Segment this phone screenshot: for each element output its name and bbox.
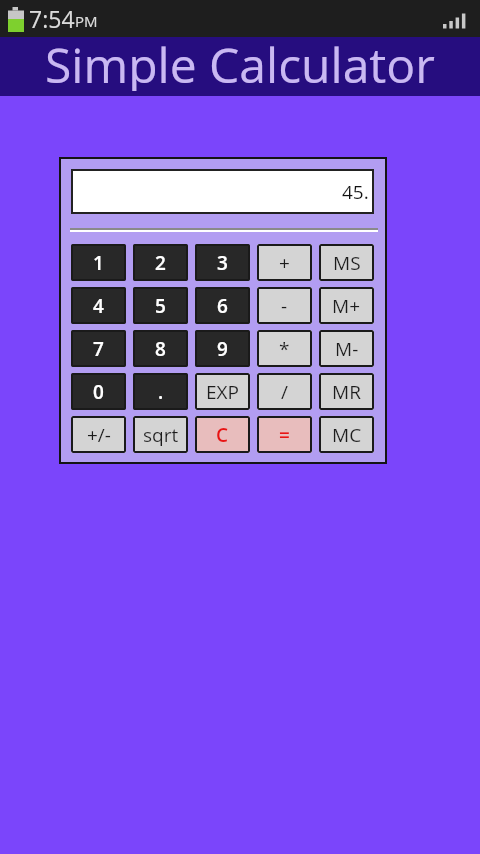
button[interactable]: 4: [71, 287, 126, 324]
button[interactable]: C: [195, 416, 250, 453]
staticText: EXP: [206, 379, 239, 405]
button[interactable]: EXP: [195, 373, 250, 410]
button[interactable]: 1: [71, 244, 126, 281]
staticText: PM: [75, 11, 98, 31]
staticText: /: [281, 379, 288, 405]
staticText: MS: [333, 250, 361, 276]
staticText: 2: [155, 250, 166, 276]
staticText: 8: [155, 336, 166, 362]
button[interactable]: *: [257, 330, 312, 367]
staticText: +/-: [87, 422, 111, 448]
staticText: Simple Calculator: [45, 32, 435, 91]
button[interactable]: 5: [133, 287, 188, 324]
button[interactable]: +/-: [71, 416, 126, 453]
staticText: sqrt: [143, 422, 179, 448]
button[interactable]: 9: [195, 330, 250, 367]
staticText: -: [281, 293, 288, 319]
staticText: 7: [93, 336, 104, 362]
staticText: *: [279, 336, 290, 362]
button[interactable]: =: [257, 416, 312, 453]
button[interactable]: 0: [71, 373, 126, 410]
staticText: 3: [217, 250, 228, 276]
staticText: M+: [332, 293, 361, 319]
staticText: 45.: [342, 179, 369, 205]
staticText: 9: [217, 336, 228, 362]
staticText: 1: [93, 250, 104, 276]
staticText: 7:54: [29, 3, 75, 34]
button[interactable]: 2: [133, 244, 188, 281]
staticText: 4: [93, 293, 104, 319]
staticText: 6: [217, 293, 228, 319]
staticText: .: [158, 379, 164, 405]
staticText: =: [279, 422, 290, 448]
button[interactable]: /: [257, 373, 312, 410]
button[interactable]: M+: [319, 287, 374, 324]
button[interactable]: sqrt: [133, 416, 188, 453]
button[interactable]: +: [257, 244, 312, 281]
staticText: MC: [332, 422, 362, 448]
staticText: M-: [335, 336, 359, 362]
button[interactable]: MR: [319, 373, 374, 410]
staticText: C: [216, 422, 229, 448]
button[interactable]: .: [133, 373, 188, 410]
staticText: +: [279, 250, 290, 276]
button[interactable]: 6: [195, 287, 250, 324]
button[interactable]: MC: [319, 416, 374, 453]
button[interactable]: -: [257, 287, 312, 324]
button[interactable]: 8: [133, 330, 188, 367]
staticText: 5: [155, 293, 166, 319]
staticText: MR: [332, 379, 361, 405]
button[interactable]: MS: [319, 244, 374, 281]
button[interactable]: 3: [195, 244, 250, 281]
staticText: 0: [93, 379, 104, 405]
button[interactable]: 7: [71, 330, 126, 367]
button[interactable]: M-: [319, 330, 374, 367]
